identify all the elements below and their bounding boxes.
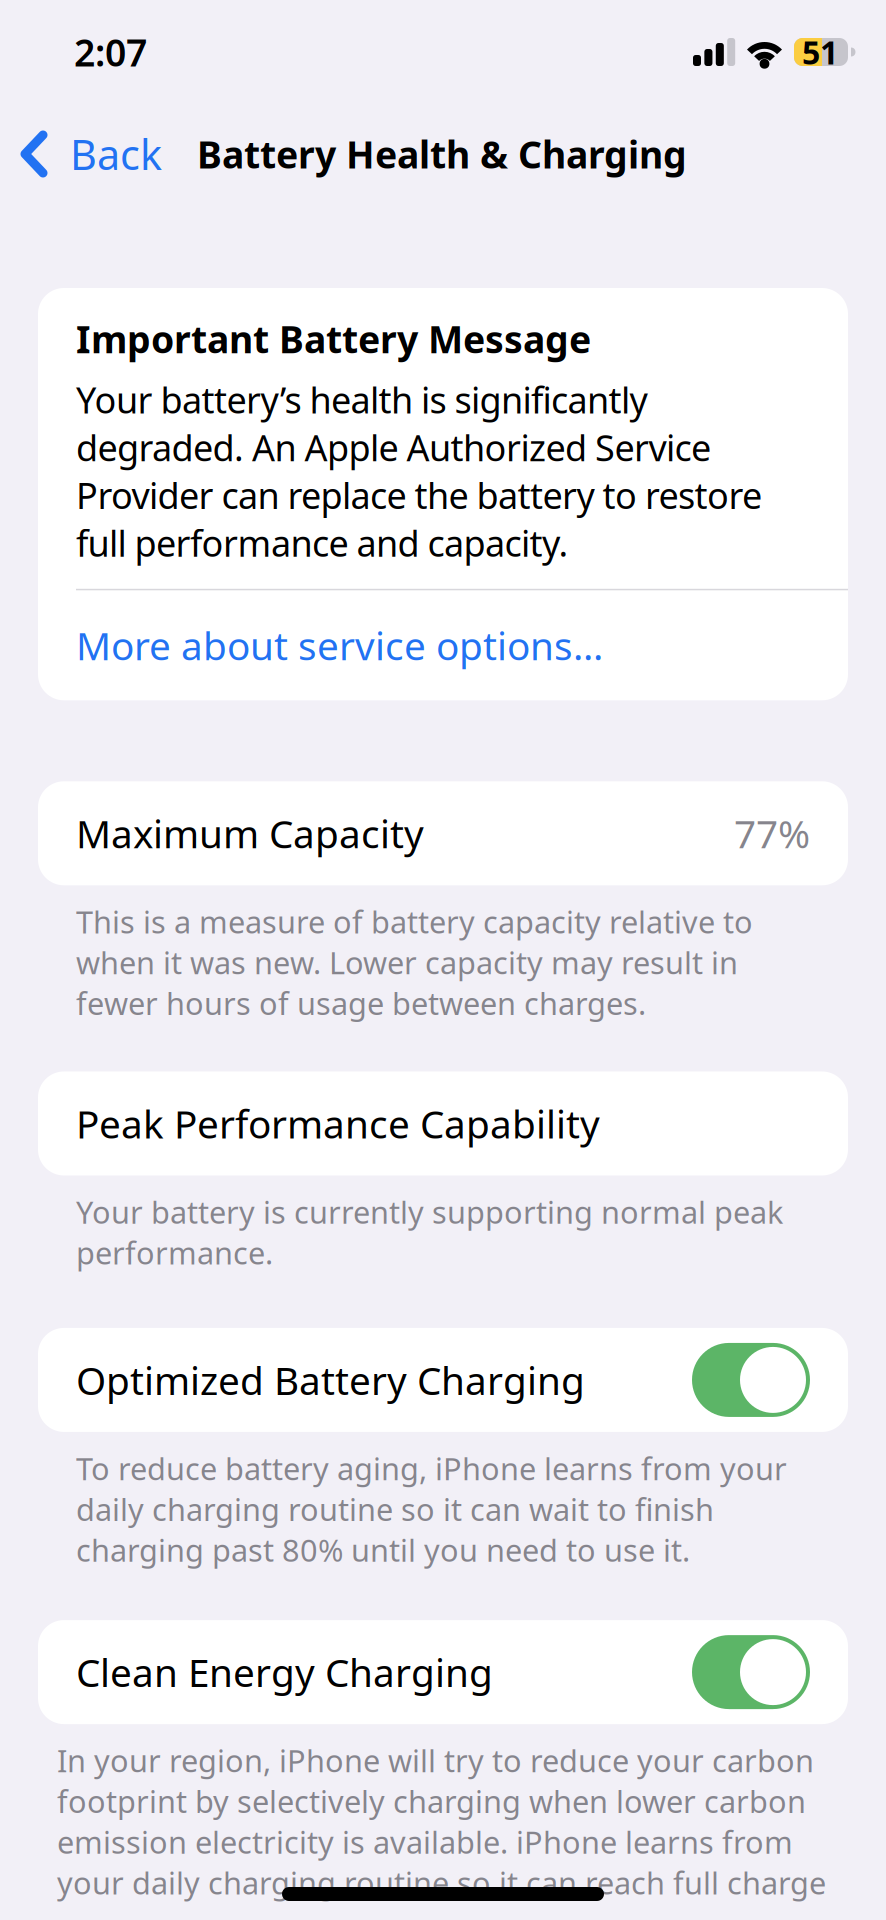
button[interactable]: Peak Performance Capability — [38, 1071, 848, 1175]
staticText: In your region, iPhone will try to reduc… — [57, 1740, 826, 1903]
staticText: To reduce battery aging, iPhone learns f… — [76, 1448, 787, 1570]
staticText: Battery Health & Charging — [197, 129, 687, 179]
staticText: 51 — [802, 31, 838, 73]
staticText: This is a measure of battery capacity re… — [76, 901, 753, 1023]
staticText: Your battery is currently supporting nor… — [76, 1191, 783, 1273]
staticText: Peak Performance Capability — [76, 1098, 600, 1149]
staticText: Back — [70, 127, 162, 181]
button[interactable]: Optimized Battery Charging — [38, 1328, 848, 1432]
staticText: Clean Energy Charging — [76, 1646, 493, 1698]
staticText: More about service options... — [76, 620, 603, 671]
staticText: Important Battery Message — [76, 314, 591, 364]
staticText: 77% — [734, 808, 810, 859]
staticText: Maximum Capacity — [76, 808, 424, 859]
staticText: 2:07 — [74, 27, 147, 77]
staticText: Your battery’s health is significantly d… — [76, 376, 762, 567]
button[interactable]: Back — [0, 108, 176, 200]
button[interactable]: More about service options... — [38, 590, 848, 700]
button[interactable]: Clean Energy Charging — [38, 1620, 848, 1724]
staticText: Optimized Battery Charging — [76, 1354, 585, 1406]
